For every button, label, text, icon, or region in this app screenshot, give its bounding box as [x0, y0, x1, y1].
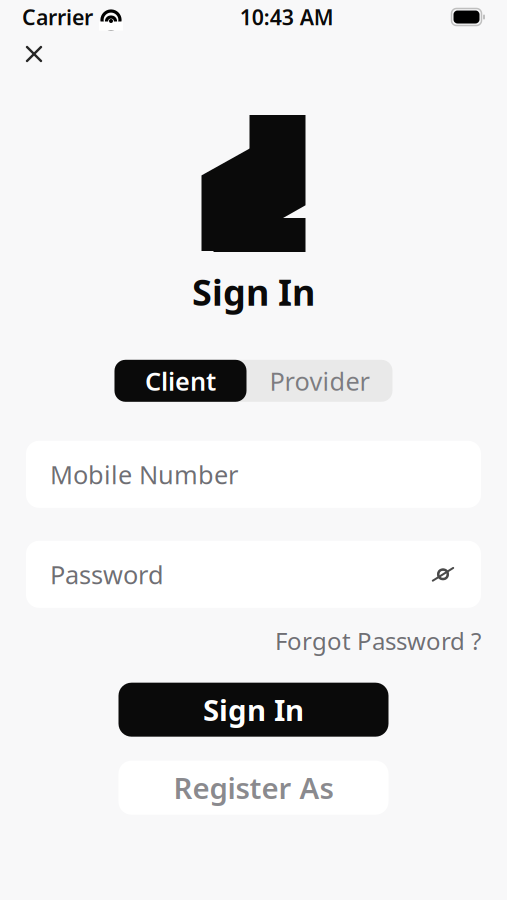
staticText: Password [50, 557, 164, 591]
button[interactable]: Mobile Number [26, 441, 481, 508]
button[interactable]: Provider [246, 360, 392, 402]
staticText: Provider [269, 364, 369, 398]
staticText: Carrier [22, 3, 93, 31]
button[interactable]: Close [14, 34, 54, 74]
staticText: Client [145, 364, 216, 398]
button[interactable]: Client [114, 360, 246, 402]
staticText: 10:43 AM [240, 3, 334, 31]
staticText: Sign In [192, 268, 315, 316]
button[interactable]: Register As [118, 761, 388, 815]
staticText: Sign In [203, 690, 304, 729]
staticText: Register As [173, 768, 333, 807]
button[interactable]: Forgot Password ? [275, 625, 481, 657]
button[interactable]: Sign In [118, 683, 388, 737]
staticText: Forgot Password ? [275, 625, 481, 657]
staticText: Mobile Number [50, 457, 238, 491]
button[interactable]: Password [26, 541, 481, 608]
